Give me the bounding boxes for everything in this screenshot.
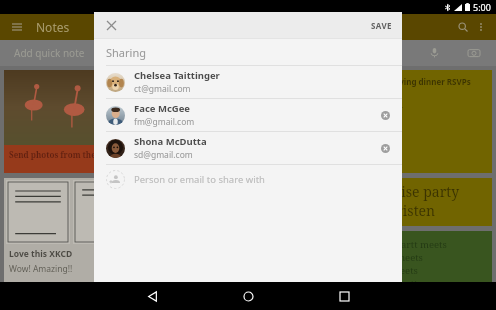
staticText: fm@gmail.com [134,116,195,128]
staticText: ct@gmail.com [134,83,191,95]
staticText: Beth [363,127,380,137]
button[interactable]: Close [100,14,122,36]
staticText: Thanksgiving dinner RSVPs [363,76,471,87]
staticText: Jordan [363,151,386,161]
staticText: Amy Milner [363,103,404,113]
button[interactable]: Love this XKCD [4,178,139,282]
button[interactable]: Chelsea Taittinger [94,66,402,98]
button[interactable]: Menu [8,18,26,36]
staticText: Person or email to share with [134,173,265,186]
button[interactable]: Home [200,282,296,310]
button[interactable]: Send photos from the zoo [4,70,139,173]
staticText: Notes [36,19,70,35]
staticText: Face McGee [134,102,191,115]
staticText: sd@gmail.com [134,149,193,161]
staticText: Kristen [363,115,388,125]
staticText: SAVE [371,20,392,31]
staticText: Add quick note [14,46,85,60]
staticText: Donna Tartt meets Jordan meets Ewan meet… [363,238,447,282]
staticText: 5:00 [473,1,491,13]
staticText: Stravinsky [363,139,399,149]
staticText: Shona McDutta [134,135,207,148]
button[interactable]: Person or email to share with [94,165,402,193]
staticText: Love this XKCD [9,248,73,260]
staticText: Chelsea Taittinger [134,69,220,82]
button[interactable]: Shona McDutta [94,132,402,164]
button[interactable]: Face McGee [94,99,402,131]
staticText: Vera [363,91,379,101]
staticText: Sharing [106,45,146,60]
button[interactable]: SAVE [361,15,402,36]
staticText: Wow! Amazing!! [9,263,73,275]
button[interactable]: Remove Face McGee [376,106,394,124]
staticText: Surprise party for Kristen [363,182,460,220]
button[interactable]: More options [472,18,490,36]
button[interactable]: Remove Shona McDutta [376,139,394,157]
button[interactable]: Recents [296,282,392,310]
button[interactable]: Search [454,18,472,36]
button[interactable]: Back [104,282,200,310]
staticText: Send photos from the zoo [9,149,112,160]
